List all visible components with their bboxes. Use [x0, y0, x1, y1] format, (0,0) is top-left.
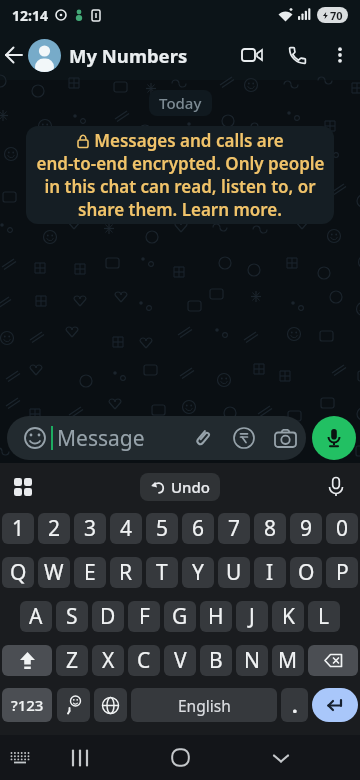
button[interactable]: E	[74, 557, 106, 588]
button[interactable]	[155, 735, 205, 780]
staticText: P	[336, 558, 349, 587]
staticText: English	[178, 695, 231, 716]
button[interactable]: G	[164, 601, 196, 632]
staticText: H	[208, 602, 224, 631]
staticText: Undo	[171, 477, 210, 497]
button[interactable]: T	[146, 557, 178, 588]
button[interactable]: ?123	[2, 688, 52, 722]
staticText: 70	[330, 8, 343, 23]
button[interactable]: H	[200, 601, 232, 632]
button[interactable]	[312, 688, 358, 722]
button[interactable]: I	[254, 557, 286, 588]
button[interactable]: C	[128, 645, 160, 676]
button[interactable]	[2, 645, 52, 676]
button[interactable]: X	[92, 645, 124, 676]
staticText: 1	[12, 514, 25, 543]
staticText: Messages and calls are	[94, 129, 284, 152]
button[interactable]: 8	[254, 513, 286, 544]
button[interactable]: .	[281, 688, 308, 722]
staticText: A	[29, 602, 43, 631]
button[interactable]	[320, 30, 360, 80]
button[interactable]: U	[218, 557, 250, 588]
button[interactable]: K	[272, 601, 304, 632]
button[interactable]	[0, 735, 40, 780]
button[interactable]: Z	[56, 645, 88, 676]
button[interactable]: Undo	[140, 473, 220, 501]
button[interactable]: B	[200, 645, 232, 676]
staticText: O	[298, 558, 315, 587]
button[interactable]: Messages and calls are	[26, 126, 334, 224]
staticText: share them. Learn more.	[78, 198, 282, 221]
button[interactable]: F	[128, 601, 160, 632]
staticText: 12:14	[12, 6, 48, 25]
staticText: ?123	[11, 695, 44, 715]
button[interactable]	[256, 735, 306, 780]
staticText: X	[102, 646, 115, 675]
staticText: Z	[66, 646, 79, 675]
button[interactable]: 4	[110, 513, 142, 544]
button[interactable]: J	[236, 601, 268, 632]
staticText: My Numbers	[69, 43, 188, 68]
button[interactable]: O	[290, 557, 322, 588]
button[interactable]	[0, 30, 28, 80]
staticText: 8	[264, 514, 277, 543]
button[interactable]: Q	[2, 557, 34, 588]
button[interactable]	[28, 39, 61, 72]
staticText: end-to-end encrypted. Only people	[36, 152, 325, 175]
staticText: 7	[228, 514, 241, 543]
button[interactable]: P	[326, 557, 358, 588]
staticText: .	[292, 692, 298, 719]
staticText: W	[44, 558, 64, 587]
staticText: 2	[48, 514, 61, 543]
staticText: 6	[192, 514, 205, 543]
button[interactable]: R	[110, 557, 142, 588]
button[interactable]: V	[164, 645, 196, 676]
button[interactable]	[229, 30, 274, 80]
button[interactable]: 9	[290, 513, 322, 544]
staticText: R	[119, 558, 133, 587]
button[interactable]	[308, 645, 358, 676]
button[interactable]: 6	[182, 513, 214, 544]
staticText: I	[266, 558, 274, 587]
button[interactable]	[57, 688, 90, 722]
button[interactable]: L	[308, 601, 340, 632]
button[interactable]: S	[56, 601, 88, 632]
staticText: J	[249, 602, 255, 631]
button[interactable]	[312, 416, 356, 460]
button[interactable]: 7	[218, 513, 250, 544]
staticText: U	[226, 558, 242, 587]
staticText: B	[209, 646, 223, 675]
button[interactable]: 0	[326, 513, 358, 544]
button[interactable]: M	[272, 645, 304, 676]
button[interactable]: 1	[2, 513, 34, 544]
staticText: M	[278, 646, 298, 675]
button[interactable]: N	[236, 645, 268, 676]
button[interactable]	[274, 30, 320, 80]
button[interactable]: 5	[146, 513, 178, 544]
staticText: L	[318, 602, 330, 631]
button[interactable]: W	[38, 557, 70, 588]
staticText: 9	[300, 514, 313, 543]
button[interactable]: 2	[38, 513, 70, 544]
staticText: C	[137, 646, 151, 675]
button[interactable]: English	[131, 688, 277, 722]
staticText: Today	[159, 93, 202, 113]
staticText: 5	[156, 514, 169, 543]
staticText: in this chat can read, listen to, or	[44, 175, 316, 198]
button[interactable]: Y	[182, 557, 214, 588]
staticText: Q	[10, 558, 27, 587]
staticText: 4	[120, 514, 133, 543]
button[interactable]: D	[92, 601, 124, 632]
button[interactable]: A	[20, 601, 52, 632]
button[interactable]: Message	[7, 416, 306, 460]
button[interactable]: 3	[74, 513, 106, 544]
button[interactable]	[94, 688, 127, 722]
staticText: 0	[336, 514, 349, 543]
staticText: G	[172, 602, 188, 631]
staticText: Y	[192, 558, 204, 587]
staticText: N	[244, 646, 260, 675]
staticText: K	[282, 602, 295, 631]
staticText: S	[66, 602, 78, 631]
button[interactable]	[55, 735, 105, 780]
staticText: E	[84, 558, 96, 587]
